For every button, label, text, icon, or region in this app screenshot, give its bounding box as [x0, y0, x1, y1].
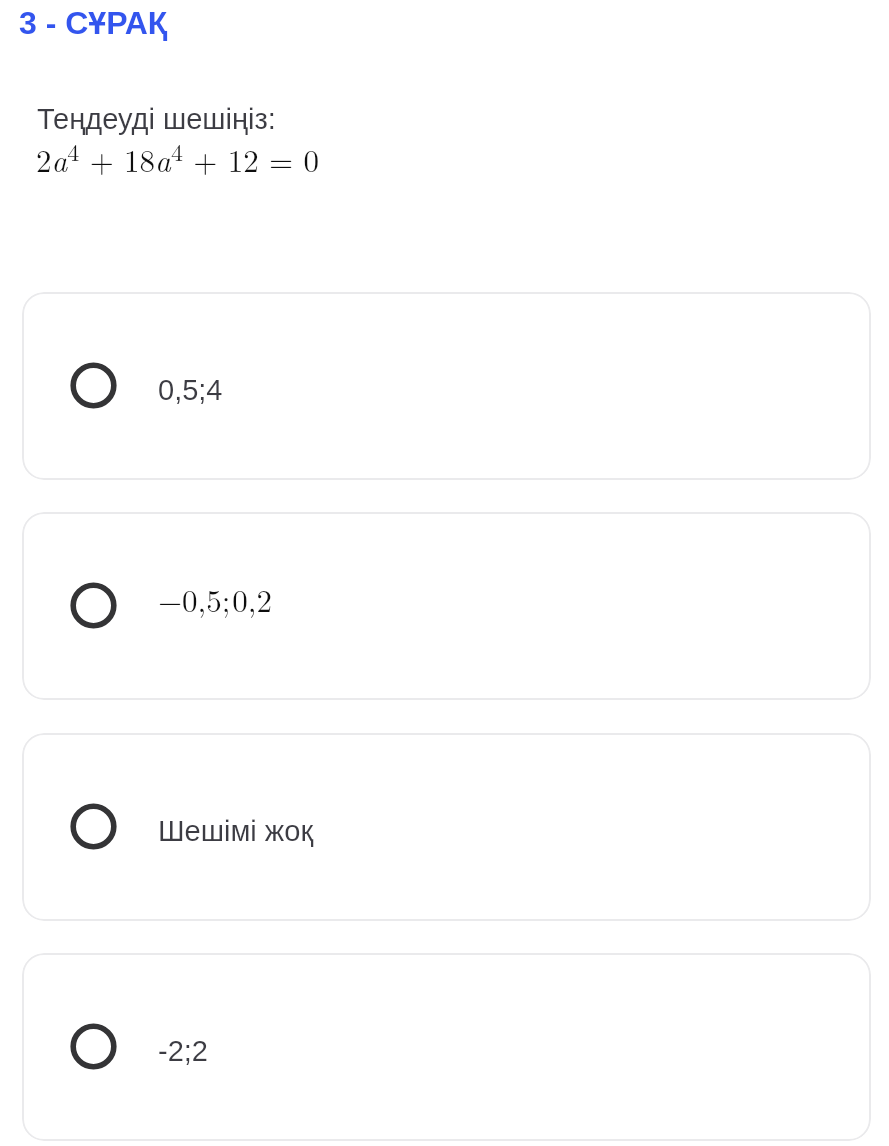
button[interactable]: Жауап -0,5; 0,2: [22, 512, 871, 700]
staticText: -2;2: [158, 1035, 208, 1067]
staticText: 2a4 + 18a4 + 12 = 0: [36, 134, 319, 181]
button[interactable]: Жауап Шешімі жоқ: [22, 733, 871, 921]
staticText: −0,5; 0,2: [158, 577, 272, 621]
button[interactable]: Жауап -2;2: [22, 953, 871, 1141]
button[interactable]: 3 - СҰРАҚ: [19, 5, 168, 41]
staticText: Теңдеуді шешіңіз:: [37, 103, 276, 135]
button[interactable]: Жауап 0,5;4: [22, 292, 871, 480]
staticText: Шешімі жоқ: [158, 815, 314, 847]
staticText: 0,5;4: [158, 374, 223, 406]
